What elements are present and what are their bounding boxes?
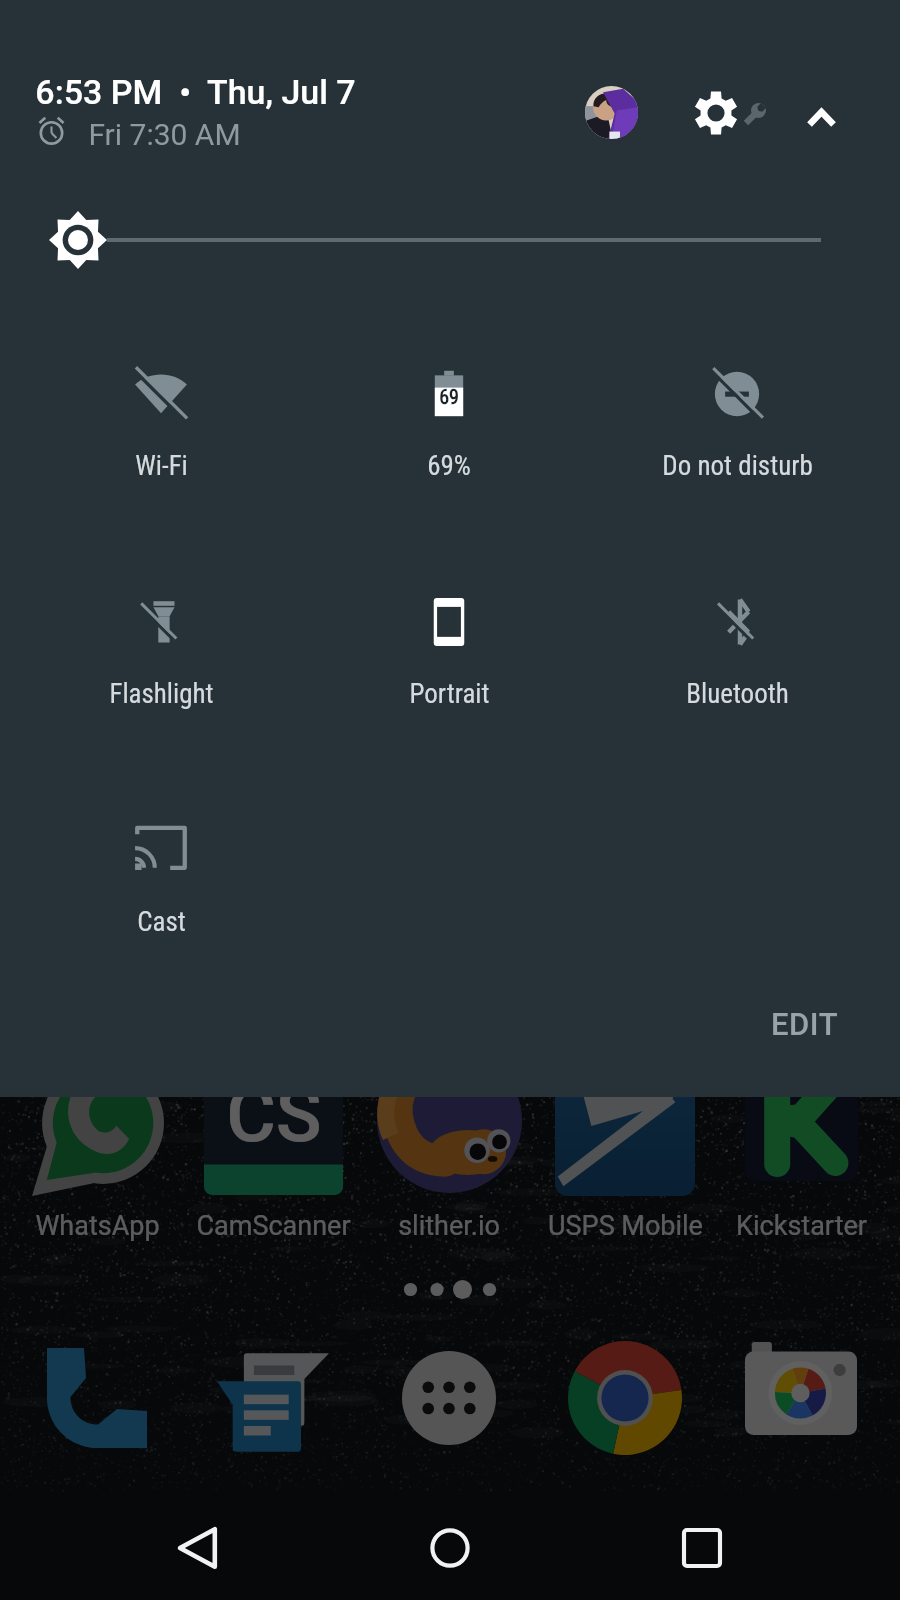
button[interactable]: Chrome	[537, 1338, 713, 1458]
button[interactable]: Back	[148, 1503, 248, 1593]
button[interactable]: Phone	[9, 1338, 185, 1458]
button[interactable]: USPS Mobile	[537, 1048, 713, 1244]
staticText: WhatsApp	[35, 1210, 160, 1242]
button[interactable]: Bluetooth	[593, 555, 881, 735]
button[interactable]: EDIT	[753, 994, 856, 1054]
button[interactable]: Brightness	[0, 206, 900, 276]
staticText: Flashlight	[109, 678, 214, 710]
button[interactable]: Recents	[652, 1503, 752, 1593]
button[interactable]: CS	[185, 1048, 361, 1244]
staticText: Wi-Fi	[135, 450, 188, 482]
staticText: 69%	[427, 450, 471, 482]
staticText: USPS Mobile	[548, 1210, 703, 1242]
button[interactable]: Camera	[713, 1338, 889, 1458]
staticText: CamScanner	[196, 1210, 351, 1242]
button[interactable]: Do not disturb	[593, 327, 881, 507]
staticText: 6:53 PM • Thu, Jul 7	[35, 72, 356, 112]
button[interactable]: Apps	[361, 1338, 537, 1458]
staticText: EDIT	[771, 1006, 838, 1042]
staticText: Portrait	[409, 678, 490, 710]
button[interactable]: Portrait	[305, 555, 593, 735]
button[interactable]: Collapse quick settings	[791, 85, 851, 145]
button[interactable]: Messages	[185, 1338, 361, 1458]
button[interactable]: Settings	[690, 86, 770, 166]
staticText: Do not disturb	[662, 450, 813, 482]
staticText: Fri 7:30 AM	[88, 117, 241, 152]
staticText: CS	[226, 1070, 322, 1159]
staticText: Bluetooth	[686, 678, 789, 710]
button[interactable]: Home	[400, 1503, 500, 1593]
button[interactable]: 69%	[305, 327, 593, 507]
button[interactable]: Flashlight	[17, 555, 305, 735]
button[interactable]: WhatsApp	[9, 1048, 185, 1244]
button[interactable]: Cast	[17, 783, 305, 963]
staticText: 69	[439, 385, 459, 408]
button[interactable]: Wi-Fi	[17, 327, 305, 507]
staticText: slither.io	[398, 1210, 500, 1242]
button[interactable]: Kickstarter	[713, 1048, 889, 1244]
staticText: Cast	[137, 906, 186, 938]
staticText: Kickstarter	[736, 1210, 867, 1242]
button[interactable]: slither.io	[361, 1048, 537, 1244]
button[interactable]: User profile	[585, 86, 638, 139]
